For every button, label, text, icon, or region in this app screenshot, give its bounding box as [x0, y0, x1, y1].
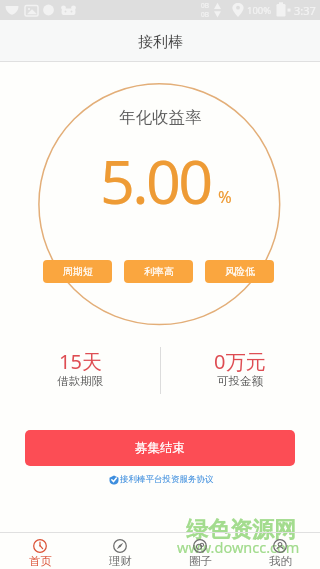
staticText: 年化收益率: [119, 107, 202, 128]
staticText: 理财: [109, 554, 132, 568]
staticText: 0B: [201, 10, 209, 19]
staticText: 3:37: [294, 3, 316, 18]
button[interactable]: 圈子: [160, 533, 240, 569]
staticText: 接利棒平台投资服务协议: [120, 474, 214, 485]
staticText: 5.00: [100, 139, 211, 222]
staticText: 0万元: [214, 348, 266, 375]
staticText: 利率高: [144, 265, 174, 278]
staticText: 15天: [59, 348, 102, 375]
staticText: 100%: [247, 4, 272, 17]
button[interactable]: 理财: [80, 533, 160, 569]
staticText: 可投金额: [217, 374, 263, 388]
button[interactable]: 我的: [240, 533, 320, 569]
staticText: 圈子: [189, 554, 212, 568]
staticText: 我的: [269, 554, 292, 568]
staticText: 绿色资源网: [186, 516, 296, 544]
staticText: 接利棒: [138, 33, 183, 52]
button[interactable]: 募集结束: [25, 430, 295, 466]
button[interactable]: 周期短: [43, 260, 112, 283]
staticText: 募集结束: [135, 440, 185, 456]
staticText: www.downcc.com: [177, 537, 300, 557]
staticText: 风险低: [225, 265, 255, 278]
button[interactable]: 利率高: [124, 260, 193, 283]
staticText: %: [218, 185, 232, 207]
staticText: 周期短: [63, 265, 93, 278]
button[interactable]: 接利棒平台投资服务协议: [109, 474, 214, 485]
staticText: 首页: [29, 554, 52, 568]
staticText: 0B: [201, 1, 209, 10]
staticText: 借款期限: [57, 374, 103, 388]
button[interactable]: 首页: [0, 533, 80, 569]
button[interactable]: 风险低: [205, 260, 274, 283]
